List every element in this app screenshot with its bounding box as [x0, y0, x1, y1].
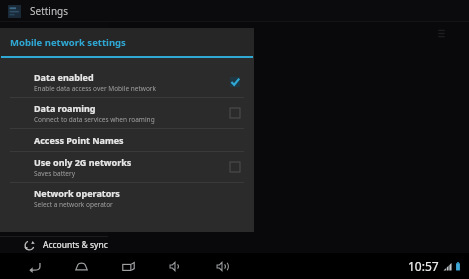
staticText: Access Point Names — [34, 134, 124, 146]
button[interactable]: Recent apps — [118, 256, 138, 276]
button[interactable]: Apps — [0, 197, 108, 218]
staticText: Display — [43, 136, 72, 148]
button[interactable]: Use only 2G networks — [0, 152, 254, 182]
staticText: Connect to data services when roaming — [34, 115, 155, 124]
staticText: DEVICE — [24, 97, 46, 105]
staticText: 10:57 — [408, 258, 439, 274]
button[interactable]: More options — [436, 28, 447, 39]
staticText: Enable data access over Mobile network — [34, 84, 157, 93]
staticText: Apps — [43, 202, 63, 214]
button[interactable]: Volume down — [165, 256, 185, 276]
staticText: Sound — [43, 114, 69, 126]
staticText: Data usage — [43, 53, 89, 65]
button[interactable]: Data enabled — [0, 67, 254, 97]
button[interactable]: Accounts & sync — [0, 237, 108, 253]
button[interactable]: Home — [71, 256, 91, 276]
staticText: Use only 2G networks — [34, 156, 132, 168]
button[interactable]: Volume up — [212, 256, 232, 276]
staticText: Battery — [43, 180, 73, 192]
button[interactable]: More... — [22, 70, 108, 91]
button[interactable]: Battery — [0, 175, 108, 196]
button[interactable]: Network operators — [0, 183, 254, 213]
staticText: Data enabled — [34, 71, 94, 83]
button[interactable]: Data roaming — [0, 98, 254, 128]
staticText: Network operators — [34, 187, 120, 199]
staticText: Settings — [30, 4, 69, 18]
button[interactable]: Display — [0, 131, 108, 152]
staticText: Accounts & sync — [43, 239, 108, 251]
staticText: Data roaming — [34, 102, 96, 114]
staticText: Wi-Fi — [43, 31, 63, 43]
button[interactable]: Sound — [0, 109, 108, 130]
staticText: Storage — [43, 158, 75, 170]
button[interactable]: Wi-Fi — [0, 26, 108, 47]
button[interactable]: Storage — [0, 153, 108, 174]
staticText: PERSONAL — [24, 225, 56, 233]
button[interactable]: Access Point Names — [0, 129, 254, 151]
button[interactable]: Data usage — [0, 48, 108, 69]
staticText: Saves battery — [34, 169, 75, 178]
staticText: More... — [42, 75, 70, 87]
staticText: Select a network operator — [34, 200, 113, 209]
button[interactable]: Back — [24, 256, 44, 276]
staticText: Mobile network settings — [10, 36, 126, 49]
